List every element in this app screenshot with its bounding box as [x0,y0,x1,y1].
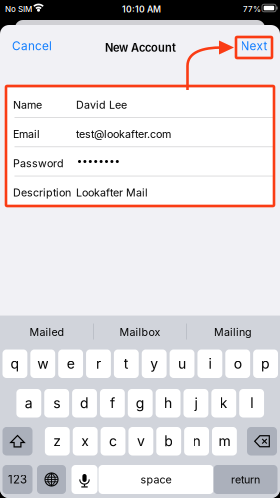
button[interactable]: return [213,465,277,494]
button[interactable]: o [225,349,250,378]
staticText: space [140,473,171,486]
button[interactable]: t [114,349,139,378]
staticText: b [164,433,173,450]
staticText: Mailing [214,325,252,338]
button[interactable]: b [156,427,181,455]
staticText: 77% [243,4,261,14]
button[interactable]: v [128,427,153,455]
button[interactable]: x [73,427,98,455]
staticText: h [164,395,172,412]
staticText: i [208,355,211,372]
staticText: j [194,395,197,412]
button[interactable]: r [86,349,111,378]
button[interactable]: Name [6,88,273,117]
staticText: l [250,395,253,412]
staticText: Name [13,98,42,111]
staticText: m [218,433,230,450]
staticText: s [53,395,60,412]
button[interactable]: Next keyboard [37,465,66,494]
button[interactable]: Description [6,176,273,205]
button[interactable]: s [44,389,69,417]
staticText: 123 [8,473,27,486]
staticText: z [53,433,61,450]
staticText: x [81,433,89,450]
button[interactable]: g [128,389,153,417]
staticText: y [150,355,158,372]
button[interactable]: e [58,349,83,378]
button[interactable]: k [211,389,236,417]
staticText: Password [13,157,64,170]
button[interactable]: m [212,427,237,455]
button[interactable]: q [2,349,27,378]
button[interactable]: l [239,389,264,417]
staticText: Lookafter Mail [76,186,148,199]
staticText: Email [13,128,40,141]
button[interactable]: w [30,349,55,378]
button[interactable]: c [101,427,125,455]
staticText: d [80,395,89,412]
staticText: New Account [105,41,176,54]
button[interactable]: j [183,389,208,417]
staticText: v [137,433,145,450]
staticText: c [109,433,117,450]
button[interactable]: f [100,389,125,417]
staticText: w [37,355,48,372]
button[interactable]: Next [239,35,269,57]
staticText: u [178,355,186,372]
button[interactable]: Shift [2,427,32,455]
button[interactable]: Mailing [187,315,279,348]
button[interactable]: a [16,389,41,417]
staticText: Mailed [29,325,64,338]
button[interactable]: Cancel [10,35,54,57]
button[interactable]: Dictate [71,465,97,494]
button[interactable]: Delete [247,427,277,455]
staticText: test@lookafter.com [76,128,171,141]
staticText: return [231,473,260,486]
button[interactable]: 123 [2,465,32,494]
staticText: 10:10 AM [122,4,161,14]
button[interactable]: u [170,349,194,378]
button[interactable]: y [142,349,167,378]
button[interactable]: Password [6,146,273,176]
staticText: Mailbox [119,325,160,338]
staticText: Next [240,39,267,53]
staticText: g [136,395,145,412]
staticText: r [96,355,101,372]
staticText: Description [13,186,71,199]
staticText: David Lee [76,98,127,111]
button[interactable]: p [253,349,278,378]
staticText: a [25,395,33,412]
button[interactable]: space [98,465,213,494]
staticText: Cancel [12,39,52,53]
staticText: p [261,355,270,372]
button[interactable]: Email [6,117,273,146]
staticText: n [193,433,201,450]
button[interactable]: h [156,389,181,417]
button[interactable]: z [45,427,70,455]
staticText: f [110,395,115,412]
staticText: q [10,355,19,372]
staticText: o [234,355,242,372]
staticText: k [220,395,228,412]
staticText: No SIM [5,4,32,14]
button[interactable]: d [72,389,97,417]
staticText: t [124,355,129,372]
button[interactable]: i [197,349,222,378]
button[interactable]: Mailed [1,315,93,348]
button[interactable]: n [184,427,209,455]
button[interactable]: Mailbox [94,315,186,348]
staticText: e [67,355,75,372]
